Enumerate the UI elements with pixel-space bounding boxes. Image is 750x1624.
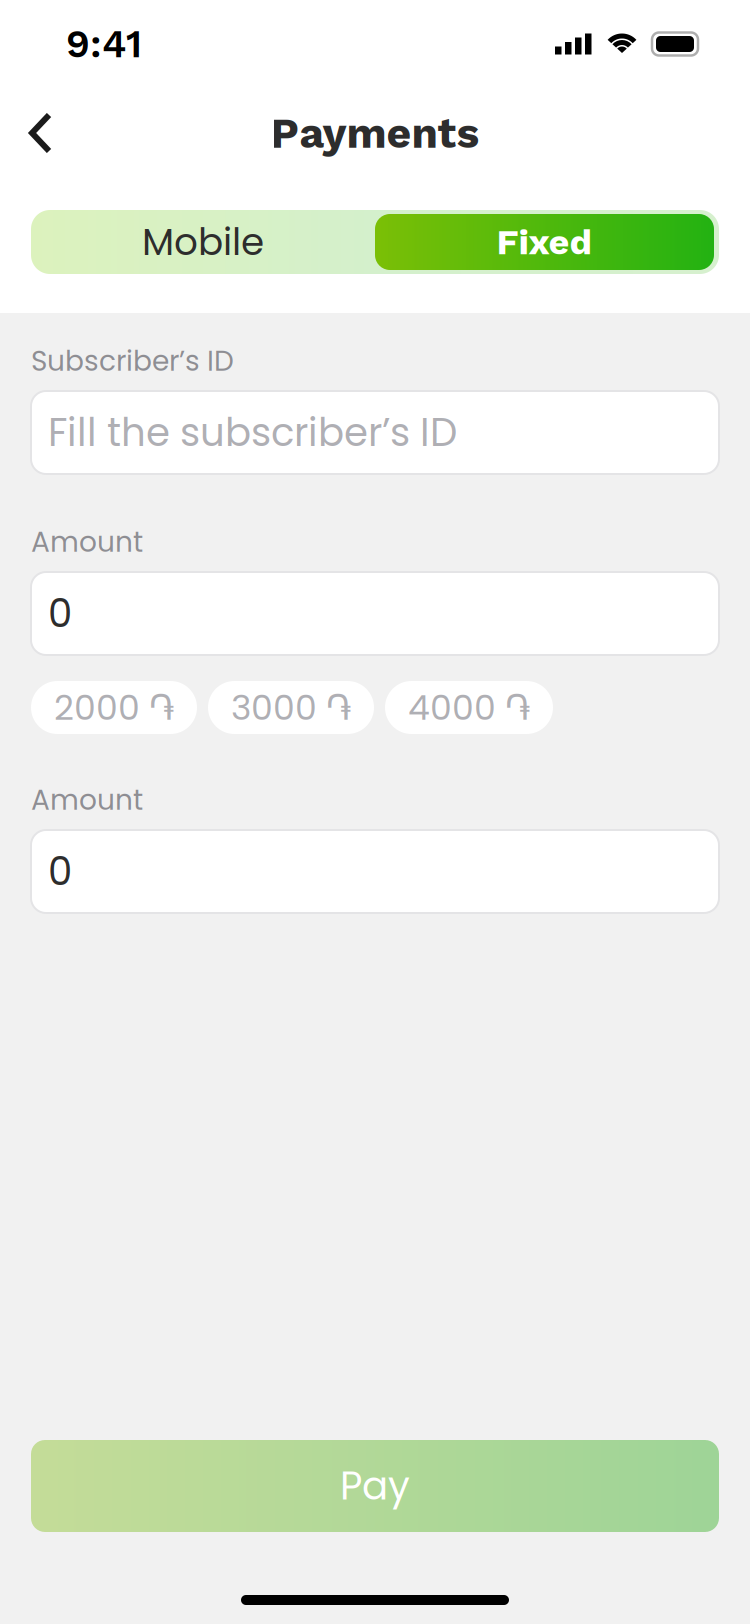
staticText: 2000 ֏: [54, 683, 174, 732]
staticText: 0: [48, 844, 72, 898]
staticText: 3000 ֏: [231, 683, 351, 732]
staticText: Fixed: [496, 221, 592, 263]
staticText: 9:41: [66, 21, 142, 67]
staticText: Pay: [340, 1459, 410, 1513]
staticText: 4000 ֏: [408, 683, 530, 732]
staticText: Amount: [31, 522, 143, 562]
staticText: Fill the subscriber’s ID: [48, 405, 457, 459]
button[interactable]: Pay: [31, 1440, 719, 1532]
staticText: Mobile: [142, 216, 264, 268]
button[interactable]: Mobile: [31, 210, 375, 274]
button[interactable]: Fixed: [375, 210, 719, 274]
staticText: Amount: [31, 780, 143, 820]
staticText: Subscriber’s ID: [31, 341, 234, 381]
button[interactable]: 3000 ֏: [208, 681, 374, 734]
staticText: Payments: [270, 108, 479, 158]
button[interactable]: Back: [0, 95, 77, 171]
button[interactable]: 2000 ֏: [31, 681, 197, 734]
staticText: 0: [48, 586, 72, 640]
button[interactable]: 4000 ֏: [385, 681, 553, 734]
